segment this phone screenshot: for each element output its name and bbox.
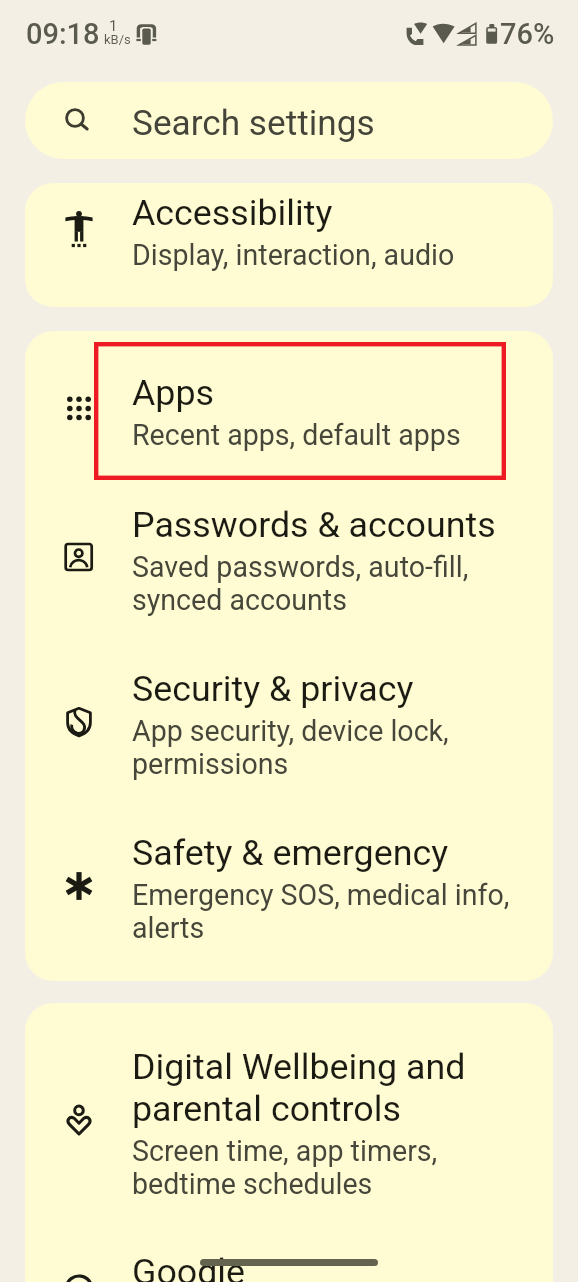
staticText: kB/s: [104, 32, 131, 47]
staticText: Passwords & accounts: [132, 504, 496, 546]
staticText: Accessibility: [132, 192, 333, 234]
button[interactable]: Google: [57, 1267, 101, 1282]
button[interactable]: Passwords and accounts: [57, 535, 101, 579]
staticText: Search settings: [132, 102, 375, 143]
staticText: Digital Wellbeing and parental controls: [132, 1046, 466, 1130]
staticText: Emergency SOS, medical info, alerts: [132, 879, 510, 945]
staticText: 09:18: [26, 17, 100, 51]
button[interactable]: Digital Wellbeing: [57, 1099, 101, 1143]
staticText: Display, interaction, audio: [132, 239, 455, 272]
staticText: Safety & emergency: [132, 832, 449, 874]
button[interactable]: Security and privacy: [57, 700, 101, 744]
staticText: Recent apps, default apps: [132, 419, 461, 452]
staticText: Google: [132, 1251, 246, 1282]
button[interactable]: Safety and emergency: [57, 864, 101, 908]
staticText: Screen time, app timers, bedtime schedul…: [132, 1135, 438, 1201]
staticText: Saved passwords, auto-fill, synced accou…: [132, 551, 469, 617]
staticText: Apps: [132, 372, 215, 414]
staticText: Security & privacy: [132, 668, 414, 710]
staticText: 1: [109, 17, 118, 35]
staticText: 76%: [500, 17, 555, 51]
button[interactable]: Apps: [57, 387, 101, 431]
button[interactable]: Search: [25, 82, 553, 159]
button[interactable]: Accessibility: [57, 207, 101, 251]
staticText: App security, device lock, permissions: [132, 715, 449, 781]
other: Search: [63, 106, 87, 130]
